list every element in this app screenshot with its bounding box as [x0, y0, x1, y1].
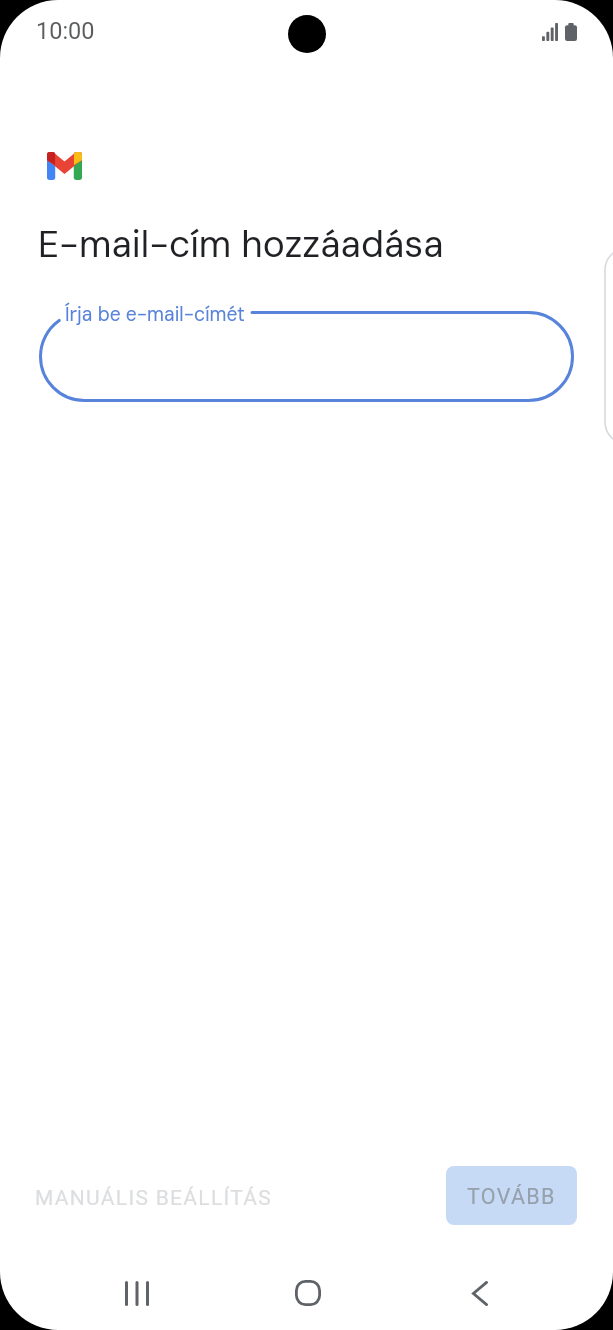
- staticText: E-mail-cím hozzáadása: [38, 220, 444, 268]
- button[interactable]: TOVÁBB: [446, 1166, 577, 1225]
- button[interactable]: Back: [456, 1269, 504, 1317]
- staticText: TOVÁBB: [467, 1184, 556, 1209]
- button[interactable]: Recent apps: [113, 1269, 161, 1317]
- staticText: 10:00: [36, 17, 95, 45]
- staticText: Írja be e-mail-címét: [65, 302, 245, 327]
- button[interactable]: Írja be e-mail-címét: [39, 311, 574, 402]
- staticText: MANUÁLIS BEÁLLÍTÁS: [35, 1186, 273, 1211]
- button[interactable]: Home: [284, 1269, 332, 1317]
- button[interactable]: MANUÁLIS BEÁLLÍTÁS: [17, 1174, 291, 1223]
